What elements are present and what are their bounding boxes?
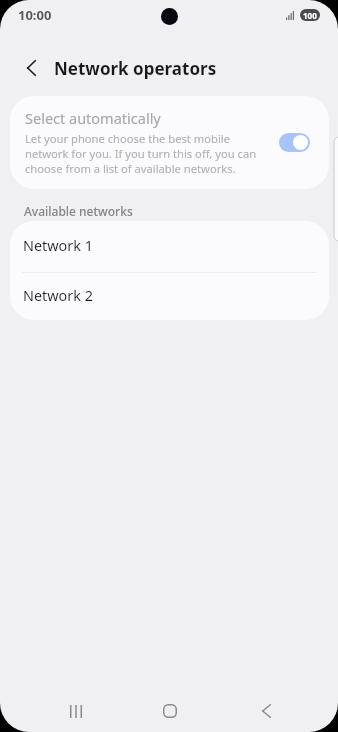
- staticText: 100: [303, 10, 317, 21]
- staticText: Let your phone choose the best mobile ne…: [25, 131, 265, 176]
- button[interactable]: Home: [142, 687, 198, 732]
- button[interactable]: Network 2: [10, 273, 329, 320]
- staticText: 10:00: [18, 6, 52, 24]
- button[interactable]: Network 1: [10, 221, 329, 272]
- button[interactable]: Back: [12, 49, 50, 87]
- staticText: Network 1: [23, 236, 93, 256]
- button[interactable]: Select automatically: [10, 96, 329, 189]
- staticText: Network 2: [23, 286, 93, 306]
- button[interactable]: Back: [238, 687, 294, 732]
- button[interactable]: Select automatically toggle: [279, 133, 310, 152]
- staticText: Select automatically: [25, 108, 161, 128]
- staticText: Available networks: [24, 203, 133, 219]
- button[interactable]: Recent apps: [48, 687, 104, 732]
- staticText: Network operators: [54, 57, 217, 80]
